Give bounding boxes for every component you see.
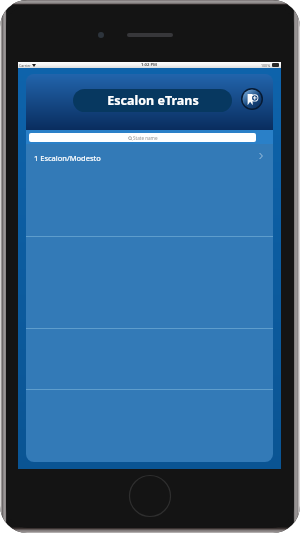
button[interactable] [26,329,273,390]
staticText: 1:02 PM [141,62,158,68]
button[interactable]: Add bookmark [241,88,263,110]
button[interactable]: Escalon eTrans [73,89,232,112]
staticText: Escalon eTrans [107,92,199,109]
button[interactable] [26,237,273,329]
staticText: 1 Escalon/Modesto [34,153,101,163]
button[interactable]: 1 Escalon/Modesto [26,144,273,237]
staticText: Carrier [19,63,31,68]
staticText: State name [133,135,158,141]
button[interactable]: State name [29,133,256,142]
staticText: 100% [261,63,271,68]
